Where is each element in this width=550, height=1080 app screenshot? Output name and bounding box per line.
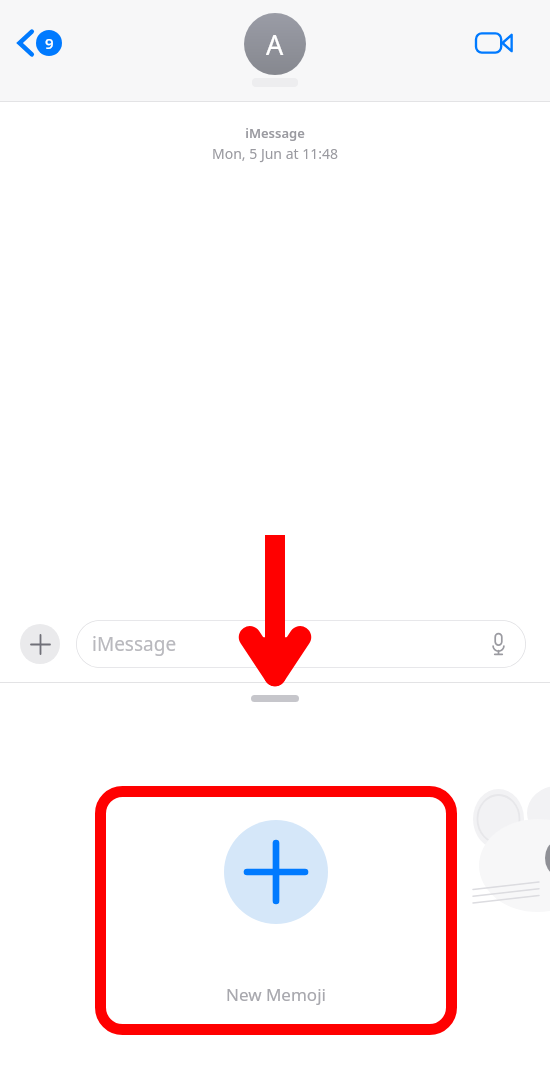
staticText: New Memoji: [226, 983, 326, 1006]
button[interactable]: FaceTime video call: [468, 23, 520, 63]
staticText: 9: [45, 33, 54, 53]
staticText: iMessage: [245, 124, 305, 142]
button[interactable]: Drag handle: [251, 695, 299, 702]
button[interactable]: Back, 9 unread: [10, 24, 70, 62]
button[interactable]: Dictate: [484, 630, 512, 658]
staticText: Mon, 5 Jun at 11:48: [212, 144, 338, 163]
staticText: iMessage: [92, 631, 177, 657]
button[interactable]: Add attachment: [20, 624, 60, 664]
button[interactable]: iMessage: [76, 620, 526, 668]
staticText: A: [266, 26, 284, 63]
button[interactable]: New Memoji: [95, 786, 457, 1035]
button[interactable]: A: [238, 13, 312, 87]
